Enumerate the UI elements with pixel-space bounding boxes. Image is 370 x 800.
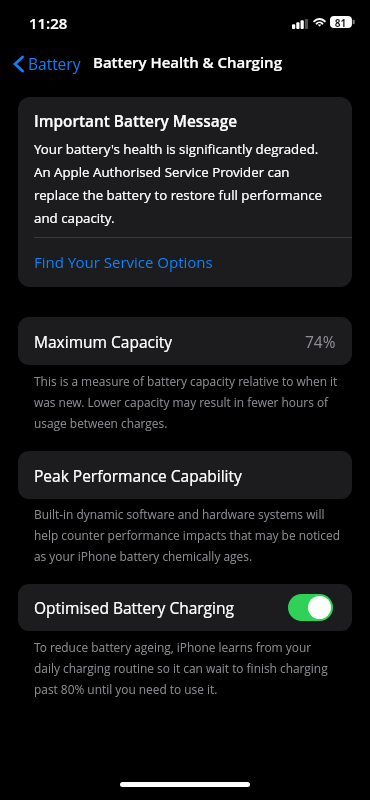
staticText: Find Your Service Options [34,252,213,272]
staticText: Maximum Capacity [34,331,173,352]
button[interactable]: Peak Performance Capability [18,451,352,499]
staticText: Important Battery Message [34,111,238,132]
staticText: Battery [28,53,81,74]
button[interactable]: Find Your Service Options [18,238,352,286]
staticText: Optimised Battery Charging [34,597,234,618]
button[interactable]: Maximum Capacity [18,317,352,365]
staticText: 74% [305,331,336,352]
staticText: 81 [333,16,348,28]
staticText: Built-in dynamic software and hardware s… [34,506,340,564]
button[interactable]: Battery [0,50,89,81]
staticText: This is a measure of battery capacity re… [34,373,340,431]
staticText: Your battery's health is significantly d… [34,140,336,227]
staticText: 11:28 [29,13,68,33]
staticText: Battery Health & Charging [93,52,282,72]
button[interactable]: Optimised Battery Charging toggle, on [288,594,333,621]
staticText: Peak Performance Capability [34,465,242,486]
staticText: To reduce battery ageing, iPhone learns … [34,639,340,697]
